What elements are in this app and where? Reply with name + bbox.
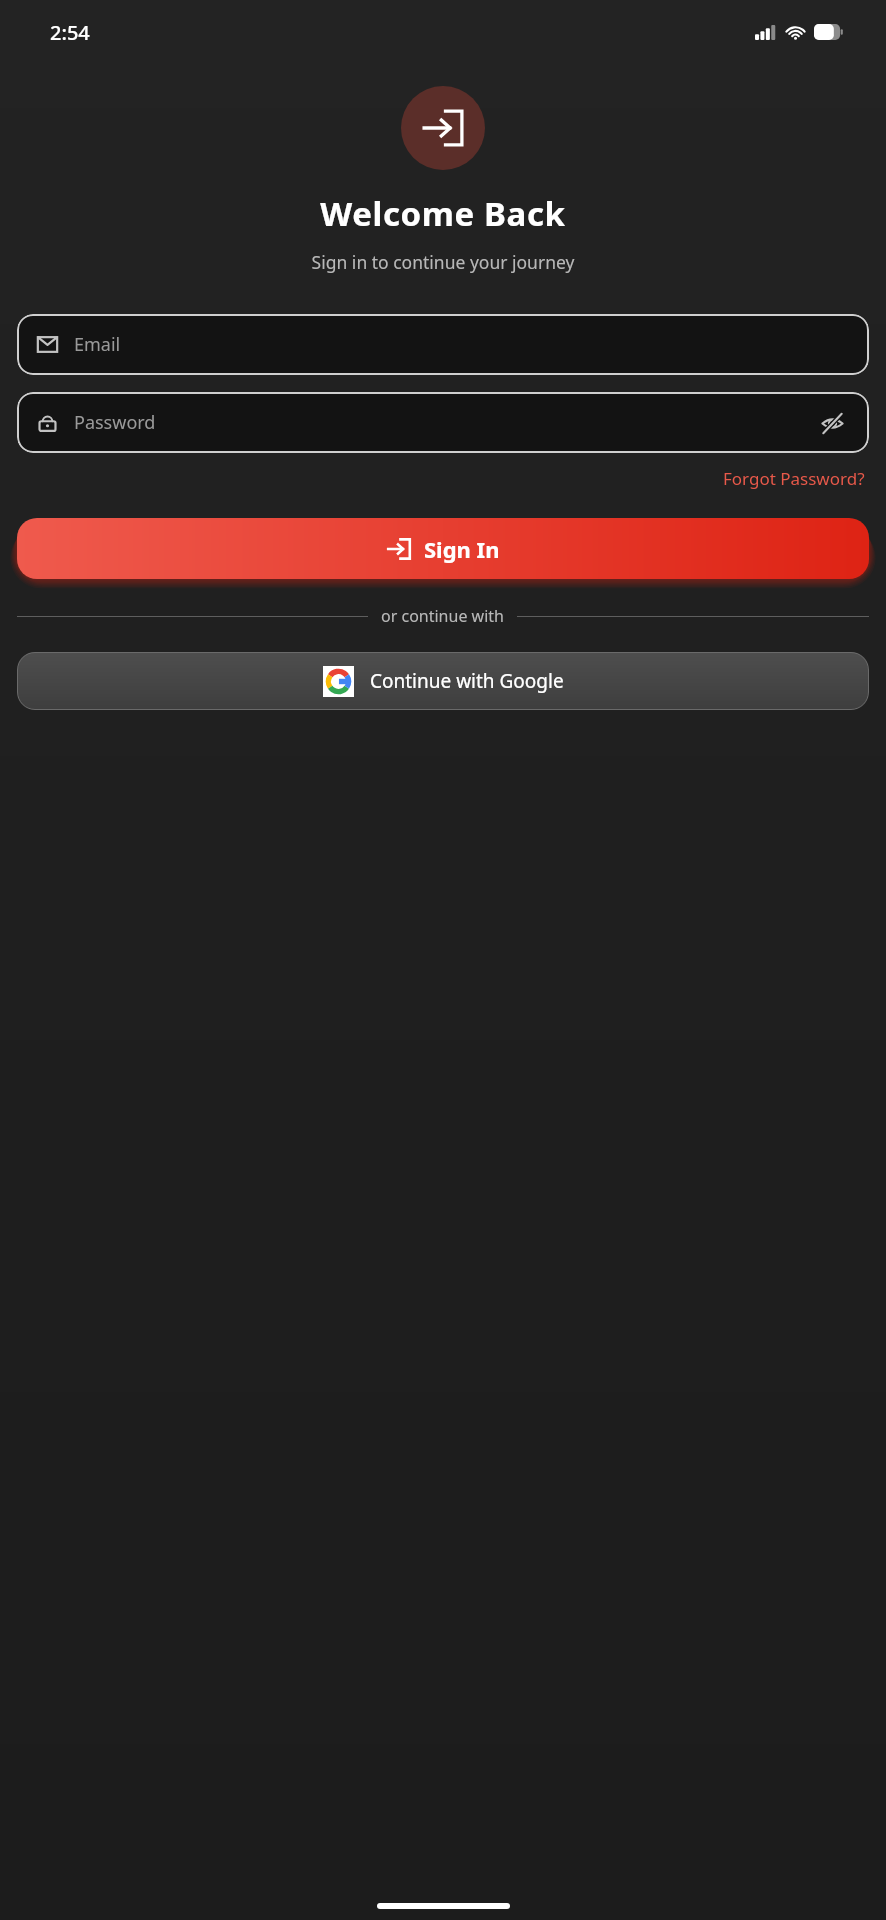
button[interactable]: Show password xyxy=(815,406,849,440)
staticText: Sign in to continue your journey xyxy=(0,250,886,274)
button[interactable]: Continue with Google xyxy=(17,652,869,710)
staticText: 2:54 xyxy=(50,19,90,46)
staticText: or continue with xyxy=(381,605,504,627)
staticText: Welcome Back xyxy=(0,191,886,236)
button[interactable]: Sign In xyxy=(17,518,869,579)
staticText: Sign In xyxy=(424,534,500,564)
button[interactable]: Password xyxy=(17,392,869,453)
button[interactable]: Forgot Password? xyxy=(719,462,869,495)
staticText: Email xyxy=(74,332,849,357)
staticText: Continue with Google xyxy=(370,668,564,694)
staticText: Password xyxy=(74,410,815,435)
staticText: Forgot Password? xyxy=(723,467,865,490)
button[interactable]: Email xyxy=(17,314,869,375)
